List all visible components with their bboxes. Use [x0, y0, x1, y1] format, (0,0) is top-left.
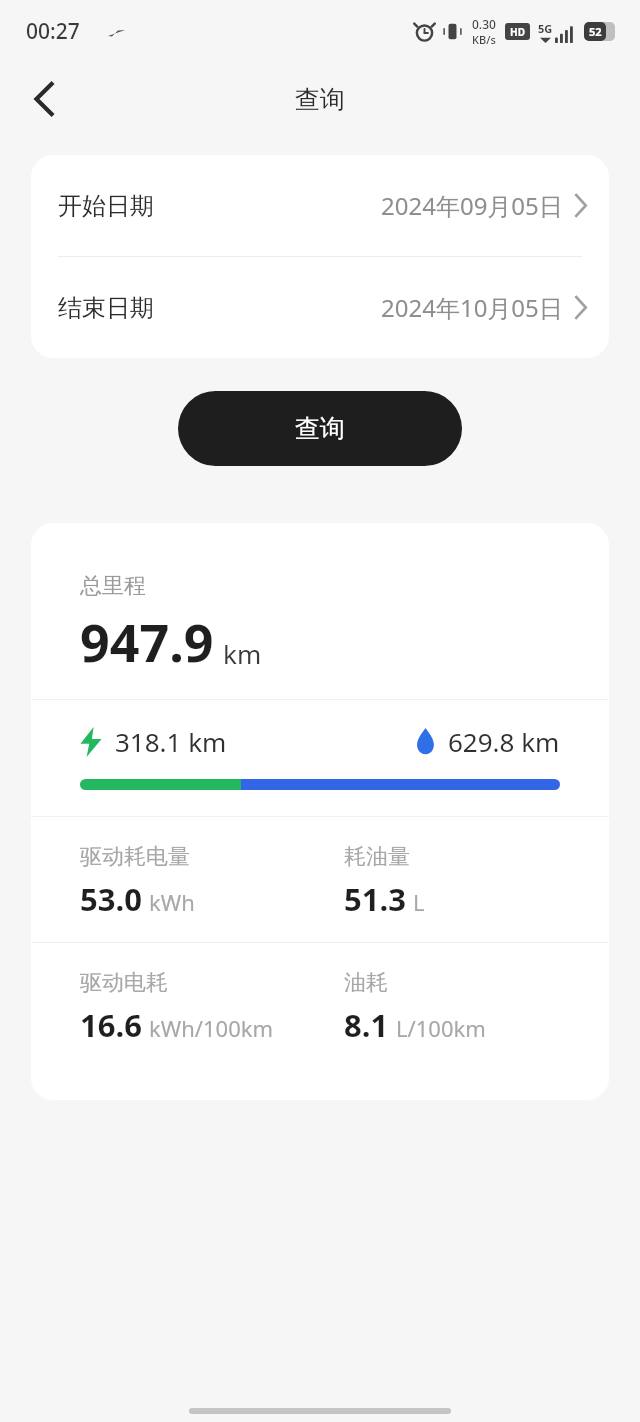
staticText: 开始日期 [58, 191, 154, 221]
staticText: kWh/100km [149, 1013, 274, 1043]
staticText: 2024年10月05日 [381, 291, 563, 324]
staticText: HD [510, 25, 525, 39]
staticText: 结束日期 [58, 293, 154, 323]
staticText: 驱动电耗 [80, 969, 168, 997]
button[interactable]: 返回 [16, 71, 72, 127]
staticText: L [413, 887, 425, 917]
staticText: kWh [149, 887, 195, 917]
staticText: 油耗 [344, 969, 388, 997]
staticText: 8.1 [344, 1004, 389, 1046]
staticText: 耗油量 [344, 843, 410, 871]
staticText: 53.0 [80, 878, 142, 920]
staticText: 51.3 [344, 878, 406, 920]
staticText: 查询 [295, 84, 345, 115]
staticText: km [223, 636, 262, 671]
staticText: 52 [589, 24, 602, 39]
staticText: KB/s [472, 32, 496, 47]
button[interactable]: 查询 [178, 391, 462, 466]
staticText: 947.9 [80, 606, 214, 677]
staticText: 00:27 [26, 17, 80, 46]
staticText: 16.6 [80, 1004, 142, 1046]
button[interactable]: 结束日期 [31, 257, 609, 358]
staticText: 2024年09月05日 [381, 189, 563, 222]
staticText: L/100km [396, 1013, 486, 1043]
staticText: 5G [538, 21, 553, 36]
staticText: 629.8 km [448, 724, 560, 759]
staticText: 查询 [295, 413, 345, 444]
button[interactable]: 开始日期 [31, 155, 609, 256]
staticText: 驱动耗电量 [80, 843, 190, 871]
staticText: 总里程 [80, 572, 146, 600]
staticText: 0.30 [472, 16, 496, 32]
staticText: 318.1 km [115, 724, 227, 759]
